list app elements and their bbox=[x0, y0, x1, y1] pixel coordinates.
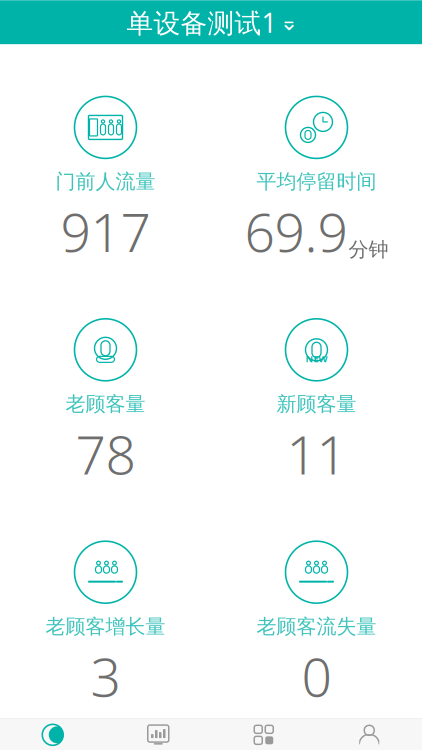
button[interactable]: 老顾客量 bbox=[0, 319, 211, 489]
button[interactable]: 单设备测试1 bbox=[0, 0, 422, 44]
staticText: 老顾客增长量 bbox=[45, 614, 165, 639]
button[interactable]: 数据 bbox=[105, 719, 211, 750]
staticText: NEW bbox=[305, 352, 327, 365]
staticText: 单设备测试1 bbox=[126, 5, 276, 40]
staticText: 6:35 PM bbox=[202, 0, 269, 2]
staticText: 门前人流量 bbox=[55, 169, 155, 194]
staticText: 917 bbox=[60, 196, 150, 267]
button[interactable]: 老顾客增长量 bbox=[0, 541, 211, 712]
staticText: 78 bbox=[75, 418, 135, 489]
button[interactable]: 我的 bbox=[316, 719, 422, 750]
staticText: 分钟 bbox=[348, 237, 388, 262]
button[interactable]: NEW bbox=[211, 319, 422, 489]
button[interactable]: 管理 bbox=[211, 719, 316, 750]
button[interactable]: 门前人流量 bbox=[0, 96, 211, 267]
staticText: 3 bbox=[90, 641, 120, 712]
staticText: 老顾客流失量 bbox=[256, 614, 376, 639]
button[interactable]: 平均停留时间 bbox=[211, 96, 422, 267]
staticText: 11 bbox=[286, 418, 346, 489]
button[interactable]: 老顾客流失量 bbox=[211, 541, 422, 712]
button[interactable]: 首页 bbox=[0, 719, 105, 750]
staticText: 老顾客量 bbox=[65, 392, 145, 416]
staticText: 平均停留时间 bbox=[256, 169, 376, 194]
staticText: 新顾客量 bbox=[276, 392, 356, 416]
staticText: 69.9 bbox=[244, 196, 347, 267]
staticText: 0 bbox=[301, 641, 331, 712]
staticText: ⌄ bbox=[279, 10, 298, 35]
staticText: Carrier bbox=[10, 0, 67, 2]
